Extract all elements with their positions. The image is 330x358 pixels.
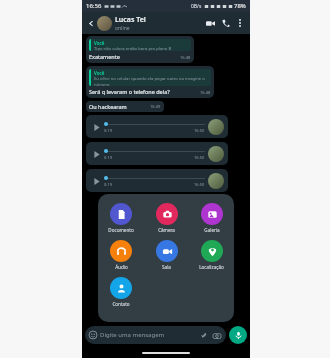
staticText: Será q levaram o telefone dela? xyxy=(89,88,170,95)
staticText: 16:50 xyxy=(194,128,205,133)
staticText: Exatamente xyxy=(89,53,120,60)
button[interactable] xyxy=(97,16,112,31)
staticText: online xyxy=(115,25,130,32)
staticText: Digite uma mensagem xyxy=(100,331,165,339)
button[interactable]: Play voice message xyxy=(90,121,102,133)
button[interactable]: Contato xyxy=(98,277,143,307)
staticText: Documento xyxy=(108,227,134,233)
button[interactable]: Digite uma mensagem xyxy=(85,326,226,344)
staticText: 0B/s xyxy=(191,3,202,10)
button[interactable]: Voice call xyxy=(218,15,234,31)
staticText: Ou hackearam xyxy=(89,103,127,110)
button[interactable]: Áudio xyxy=(98,240,144,270)
staticText: 16:48 xyxy=(200,90,211,95)
staticText: 16:49 xyxy=(150,104,161,109)
staticText: 0:19 xyxy=(104,182,112,187)
button[interactable]: Attach xyxy=(198,330,209,341)
staticText: Áudio xyxy=(115,264,128,270)
button[interactable]: Sala xyxy=(144,240,189,270)
staticText: Sala xyxy=(162,264,171,270)
button[interactable]: More options xyxy=(234,17,246,29)
staticText: Tipo não coloca então bora pro plano B xyxy=(94,46,172,51)
button[interactable]: Documento xyxy=(98,203,144,233)
button[interactable]: Play voice message xyxy=(86,115,228,138)
button[interactable]: Play voice message xyxy=(90,175,102,187)
button[interactable]: Localização xyxy=(189,240,234,270)
button[interactable]: Ou hackearam xyxy=(86,101,164,112)
button[interactable]: Play voice message xyxy=(90,148,102,160)
button[interactable]: Câmera xyxy=(144,203,189,233)
staticText: 0:19 xyxy=(104,128,112,133)
staticText: Você xyxy=(94,40,105,46)
staticText: 16:56 xyxy=(86,2,102,10)
staticText: Eu olhei no celular quando ela pegar out… xyxy=(94,76,211,86)
staticText: Lucas Tel xyxy=(115,15,146,25)
staticText: 78% xyxy=(234,2,246,10)
button[interactable]: Video call xyxy=(202,15,218,31)
staticText: 16:50 xyxy=(194,155,205,160)
button[interactable]: Camera xyxy=(211,330,222,341)
staticText: 16:50 xyxy=(194,182,205,187)
staticText: Contato xyxy=(112,301,130,307)
button[interactable]: Back xyxy=(85,17,97,29)
button[interactable]: Play voice message xyxy=(86,142,228,165)
staticText: Galeria xyxy=(204,227,220,233)
staticText: 16:48 xyxy=(180,55,191,60)
staticText: Localização xyxy=(199,264,224,270)
staticText: 0:19 xyxy=(104,155,112,160)
button[interactable]: Você xyxy=(86,36,194,63)
staticText: Câmera xyxy=(158,227,175,233)
staticText: Você xyxy=(94,70,105,76)
button[interactable]: Você xyxy=(86,66,214,98)
button[interactable]: Record voice message xyxy=(229,326,247,344)
button[interactable]: Play voice message xyxy=(86,169,228,192)
button[interactable]: Galeria xyxy=(189,203,234,233)
